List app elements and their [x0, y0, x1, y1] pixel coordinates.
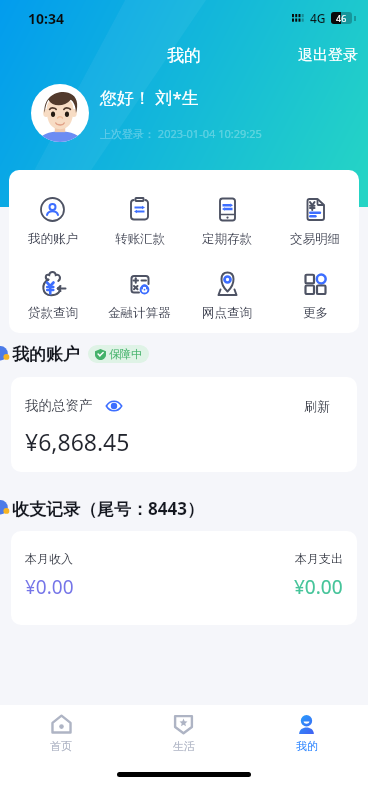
button[interactable]: 网点查询 [183, 271, 271, 321]
staticText: 46 [336, 12, 347, 24]
staticText: 收支记录（尾号：8443） [12, 497, 204, 520]
staticText: 定期存款 [202, 231, 252, 247]
staticText: ¥6,868.45 [25, 426, 130, 457]
staticText: 生活 [173, 739, 195, 753]
button[interactable]: 首页 [0, 705, 122, 762]
staticText: 您好！ 刘*生 [100, 86, 199, 109]
other: Toggle balance visibility [106, 398, 122, 414]
staticText: 贷款查询 [28, 305, 78, 321]
staticText: 上次登录： 2023-01-04 10:29:25 [100, 126, 262, 141]
staticText: ¥0.00 [25, 574, 74, 600]
staticText: 保障中 [109, 347, 142, 361]
button[interactable]: 本月收入 [11, 531, 357, 625]
staticText: 交易明细 [290, 231, 340, 247]
button[interactable]: 贷款查询 [9, 271, 96, 321]
button[interactable]: 更多 [271, 271, 359, 321]
staticText: 我的 [296, 739, 318, 753]
button[interactable]: 我的 [245, 705, 368, 762]
staticText: 我的账户 [28, 231, 78, 247]
button[interactable]: 交易明细 [271, 197, 359, 247]
staticText: 10:34 [28, 9, 64, 28]
button[interactable]: 刷新 [304, 398, 330, 414]
staticText: 本月收入 [25, 551, 73, 566]
staticText: 我的账户 [12, 344, 80, 365]
button[interactable]: 退出登录 [288, 40, 368, 71]
button[interactable]: 生活 [122, 705, 245, 762]
button[interactable]: 定期存款 [183, 197, 271, 247]
button[interactable]: 我的总资产 [11, 377, 357, 472]
staticText: ¥0.00 [294, 574, 343, 600]
staticText: 刷新 [304, 398, 330, 414]
staticText: 更多 [303, 305, 328, 321]
button[interactable]: 金融计算器 [96, 271, 183, 321]
staticText: 金融计算器 [108, 305, 171, 321]
staticText: 首页 [50, 739, 72, 753]
staticText: 本月支出 [295, 551, 343, 566]
staticText: 我的总资产 [25, 397, 93, 414]
staticText: 我的 [167, 45, 201, 66]
staticText: 4G [310, 10, 326, 26]
button[interactable]: 转账汇款 [96, 197, 183, 247]
staticText: 转账汇款 [115, 231, 165, 247]
staticText: 网点查询 [202, 305, 252, 321]
button[interactable]: 我的账户 [9, 197, 96, 247]
staticText: 退出登录 [298, 46, 358, 65]
